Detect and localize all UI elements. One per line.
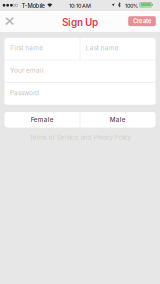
staticText: Male xyxy=(110,116,126,124)
button[interactable]: Password xyxy=(4,83,155,105)
button[interactable]: Create xyxy=(128,16,156,26)
button[interactable]: Close xyxy=(1,12,19,30)
staticText: Last name xyxy=(86,44,119,52)
staticText: First name xyxy=(10,44,43,52)
staticText: 100% xyxy=(125,2,138,9)
staticText: Password xyxy=(10,89,39,97)
button[interactable]: First name xyxy=(5,38,80,60)
staticText: Female xyxy=(31,116,54,124)
staticText: Sign Up xyxy=(62,16,98,28)
button[interactable]: Male xyxy=(80,112,155,127)
staticText: 10:10 AM xyxy=(69,2,91,9)
button[interactable]: Terms of Service and Privacy Policy xyxy=(0,134,160,141)
staticText: Create xyxy=(133,18,151,25)
staticText: T-Mobile xyxy=(21,2,44,9)
staticText: Terms of Service and Privacy Policy xyxy=(29,134,130,141)
button[interactable]: Last name xyxy=(80,38,155,60)
button[interactable]: Female xyxy=(5,112,80,127)
button[interactable]: Your email xyxy=(4,60,155,82)
staticText: Your email xyxy=(10,66,44,74)
